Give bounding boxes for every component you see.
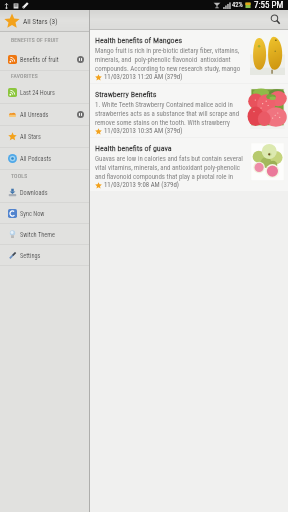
button[interactable]: All Unreads xyxy=(0,104,89,125)
staticText: 7:55 PM xyxy=(254,0,284,10)
staticText: Health benefits of guava xyxy=(95,144,172,153)
staticText: 11/03/2013 9:08 AM (379d) xyxy=(104,181,180,189)
staticText: Strawberry Benefits xyxy=(95,90,157,99)
button[interactable]: All Stars xyxy=(0,126,89,147)
staticText: Mango fruit is rich in pre-biotic dietar… xyxy=(95,47,243,72)
staticText: Health benefits of Mangoes xyxy=(95,36,183,45)
staticText: Benefits of fruit xyxy=(20,56,59,63)
staticText: All Podcasts xyxy=(20,155,52,162)
staticText: Sync Now xyxy=(20,210,45,217)
button[interactable]: Last 24 Hours xyxy=(0,82,89,103)
button[interactable]: Sync Now xyxy=(0,203,89,223)
button[interactable]: All Podcasts xyxy=(0,148,89,169)
staticText: Guavas are low in calories and fats but … xyxy=(95,155,243,180)
staticText: All Stars xyxy=(20,133,41,140)
button[interactable]: Health benefits of Mangoes xyxy=(90,30,288,83)
staticText: Settings xyxy=(20,252,41,259)
button[interactable]: Benefits of fruit xyxy=(0,49,89,70)
button[interactable]: Strawberry Benefits xyxy=(90,84,288,137)
button[interactable]: All Stars (3) xyxy=(0,10,89,31)
button[interactable]: Downloads xyxy=(0,182,89,202)
button[interactable]: Switch Theme xyxy=(0,224,89,244)
button[interactable]: Search xyxy=(269,13,282,26)
staticText: 42% xyxy=(232,1,243,9)
button[interactable]: Settings xyxy=(0,245,89,265)
staticText: Downloads xyxy=(20,189,48,196)
staticText: TOOLS xyxy=(11,173,28,180)
staticText: 11/03/2013 10:35 AM (379d) xyxy=(104,127,183,135)
staticText: All Stars (3) xyxy=(23,17,58,26)
staticText: FAVORITES xyxy=(11,73,38,80)
staticText: Last 24 Hours xyxy=(20,89,55,96)
staticText: Switch Theme xyxy=(20,231,55,238)
staticText: 11/03/2013 11:20 AM (379d) xyxy=(104,73,183,81)
staticText: All Unreads xyxy=(20,111,49,118)
staticText: 1. White Teeth Strawberry Contained mali… xyxy=(95,101,243,126)
button[interactable]: Health benefits of guava xyxy=(90,138,288,191)
staticText: BENEFITS OF FRUIT xyxy=(11,37,59,44)
